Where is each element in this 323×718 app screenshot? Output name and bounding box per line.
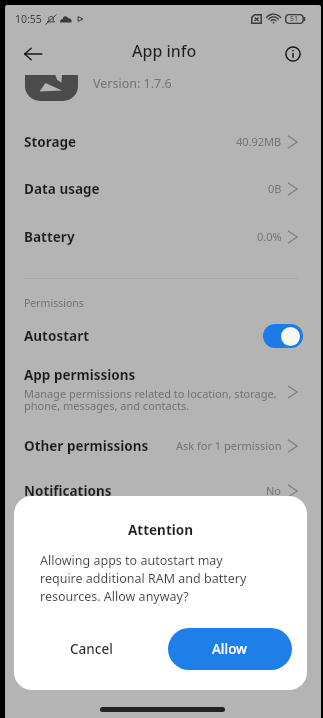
staticText: Manage permissions related to location, … bbox=[24, 386, 277, 413]
staticText: 10:55 bbox=[15, 12, 42, 26]
button[interactable]: App permissions bbox=[5, 365, 321, 419]
staticText: Ask for 1 permission bbox=[176, 438, 282, 453]
staticText: App info bbox=[132, 40, 197, 62]
button[interactable]: Data usage bbox=[5, 165, 321, 212]
staticText: Data usage bbox=[24, 180, 100, 198]
button[interactable]: Autostart bbox=[5, 312, 321, 359]
staticText: Other permissions bbox=[24, 437, 149, 455]
button[interactable]: App details bbox=[277, 38, 309, 70]
button[interactable]: Back bbox=[17, 38, 49, 70]
staticText: Battery bbox=[24, 228, 75, 246]
staticText: Version: 1.7.6 bbox=[93, 75, 172, 92]
button[interactable]: Battery bbox=[5, 213, 321, 260]
button[interactable]: Other permissions bbox=[5, 422, 321, 469]
staticText: App permissions bbox=[24, 366, 136, 384]
staticText: Permissions bbox=[24, 296, 84, 310]
staticText: 0.0% bbox=[257, 229, 282, 244]
staticText: Autostart bbox=[24, 327, 90, 345]
staticText: Notifications bbox=[24, 482, 112, 500]
staticText: 40.92MB bbox=[236, 134, 282, 149]
staticText: 0B bbox=[268, 181, 282, 196]
staticText: Cancel bbox=[70, 640, 113, 658]
staticText: Attention bbox=[128, 521, 194, 539]
staticText: 51 bbox=[290, 14, 299, 24]
button[interactable]: Cancel bbox=[29, 628, 153, 670]
staticText: Allow bbox=[212, 640, 248, 658]
staticText: No bbox=[266, 483, 282, 498]
button[interactable]: Notifications bbox=[5, 467, 321, 514]
button[interactable]: Allow bbox=[168, 628, 292, 670]
staticText: Storage bbox=[24, 133, 77, 151]
button[interactable]: Storage bbox=[5, 118, 321, 165]
staticText: Allowing apps to autostart may require a… bbox=[40, 552, 247, 605]
